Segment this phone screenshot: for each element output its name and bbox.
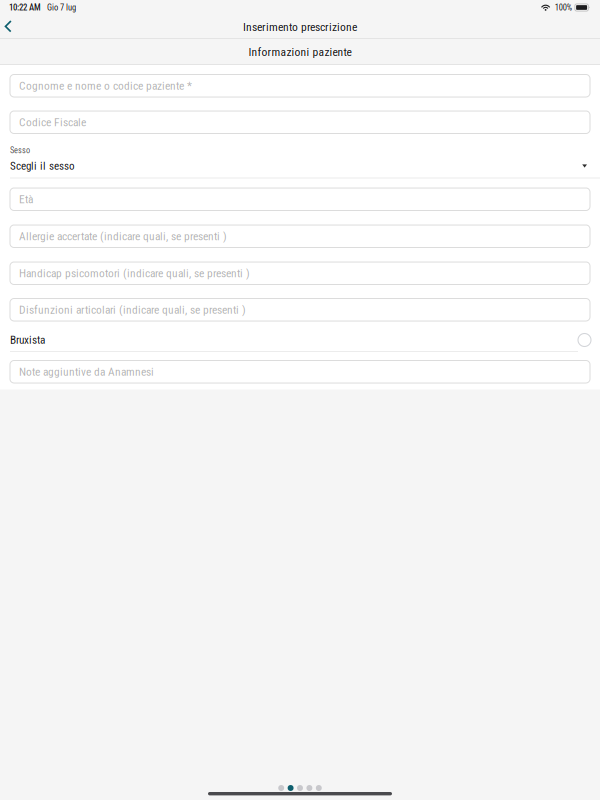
staticText: Bruxista (10, 333, 45, 347)
staticText: Sesso (10, 145, 30, 155)
button[interactable]: Scegli il sesso (0, 158, 600, 174)
staticText: Cognome e nome o codice paziente * (19, 79, 192, 92)
staticText: 10:22 AM (9, 2, 41, 13)
staticText: Allergie accertate (indicare quali, se p… (19, 229, 227, 243)
staticText: Codice Fiscale (19, 115, 86, 129)
button[interactable]: Codice Fiscale (10, 111, 590, 133)
staticText: Informazioni paziente (248, 45, 351, 59)
button[interactable]: Bruxista (0, 333, 600, 347)
staticText: Gio 7 lug (47, 2, 76, 12)
button[interactable]: Disfunzioni articolari (indicare quali, … (10, 298, 590, 321)
staticText: Note aggiuntive da Anamnesi (19, 365, 154, 378)
button[interactable]: Back (0, 15, 24, 39)
staticText: Disfunzioni articolari (indicare quali, … (19, 303, 246, 316)
button[interactable]: Allergie accertate (indicare quali, se p… (10, 225, 590, 247)
button[interactable]: Età (10, 188, 590, 210)
staticText: 100% (555, 2, 572, 12)
staticText: Scegli il sesso (10, 159, 75, 172)
staticText: Età (19, 192, 33, 206)
button[interactable]: Handicap psicomotori (indicare quali, se… (10, 262, 590, 284)
button[interactable]: Note aggiuntive da Anamnesi (10, 360, 590, 383)
staticText: Inserimento prescrizione (243, 20, 357, 34)
staticText: Handicap psicomotori (indicare quali, se… (19, 266, 250, 280)
button[interactable]: Cognome e nome o codice paziente * (10, 74, 590, 97)
